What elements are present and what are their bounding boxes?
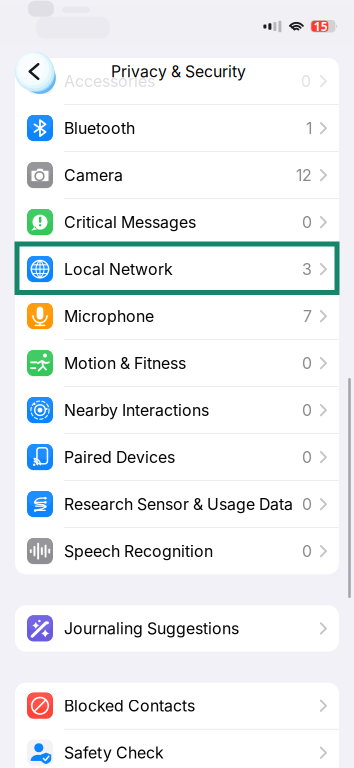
staticText: 0	[302, 448, 312, 467]
button[interactable]: Speech Recognition	[15, 528, 339, 574]
staticText: Microphone	[64, 307, 154, 326]
staticText: Speech Recognition	[64, 542, 213, 561]
staticText: Safety Check	[64, 743, 164, 762]
staticText: Local Network	[64, 260, 173, 279]
staticText: 0	[302, 401, 312, 420]
button[interactable]: Nearby Interactions	[15, 387, 339, 434]
button[interactable]: Motion & Fitness	[15, 340, 339, 387]
button[interactable]: Critical Messages	[15, 199, 339, 246]
staticText: Privacy & Security	[111, 62, 246, 81]
staticText: 12	[296, 166, 312, 185]
staticText: Nearby Interactions	[64, 401, 209, 420]
button[interactable]: Camera	[15, 152, 339, 199]
staticText: 3	[302, 260, 312, 279]
staticText: 0	[302, 495, 312, 514]
staticText: 15	[314, 18, 328, 34]
button[interactable]: Journaling Suggestions	[15, 605, 339, 652]
button[interactable]: Safety Check	[15, 730, 339, 768]
button[interactable]: Paired Devices	[15, 434, 339, 481]
button[interactable]: Back	[12, 49, 56, 93]
staticText: Critical Messages	[64, 213, 196, 232]
staticText: Research Sensor & Usage Data	[64, 495, 293, 514]
button[interactable]: Local Network	[15, 246, 339, 293]
staticText: Bluetooth	[64, 119, 135, 138]
staticText: Motion & Fitness	[64, 354, 186, 373]
staticText: 1	[306, 119, 312, 138]
staticText: 7	[303, 307, 312, 326]
button[interactable]: Microphone	[15, 293, 339, 340]
staticText: 0	[301, 72, 311, 91]
staticText: Blocked Contacts	[64, 696, 195, 715]
staticText: Camera	[64, 166, 123, 185]
button[interactable]: Research Sensor & Usage Data	[15, 481, 339, 528]
staticText: Accessories	[64, 72, 155, 91]
staticText: 0	[302, 542, 312, 561]
staticText: Journaling Suggestions	[64, 619, 239, 638]
staticText: 0	[302, 354, 312, 373]
staticText: Paired Devices	[64, 448, 175, 467]
button[interactable]: Blocked Contacts	[15, 683, 339, 730]
staticText: 0	[302, 213, 312, 232]
button[interactable]: Bluetooth	[15, 105, 339, 152]
